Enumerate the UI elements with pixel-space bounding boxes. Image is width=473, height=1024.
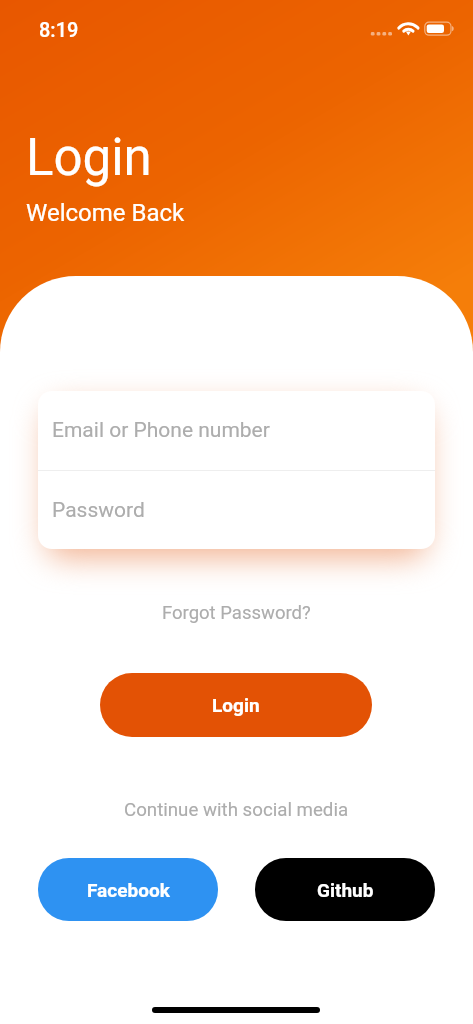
button[interactable]: Forgot Password? [150,594,323,632]
staticText: Facebook [87,879,170,901]
button[interactable]: Facebook [38,858,218,921]
staticText: Forgot Password? [162,602,311,624]
staticText: Welcome Back [26,199,185,227]
button[interactable]: Email or Phone number [38,391,435,470]
staticText: Password [52,498,145,523]
other: Status icons [366,16,462,42]
staticText: Email or Phone number [52,418,270,443]
staticText: Login [26,128,152,188]
staticText: Continue with social media [124,799,349,821]
staticText: Login [212,694,260,716]
staticText: Github [317,879,374,901]
staticText: 8:19 [39,18,79,41]
button[interactable]: Login [100,673,372,737]
button[interactable]: Password [38,471,435,549]
button[interactable]: Github [255,858,435,921]
